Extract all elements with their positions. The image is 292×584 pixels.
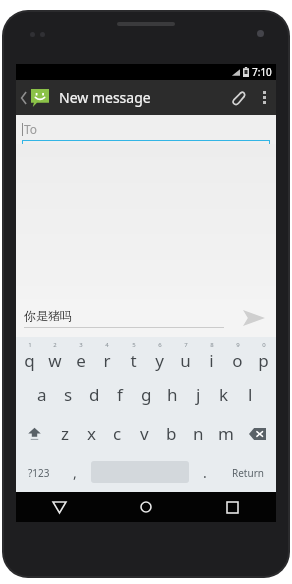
button[interactable]: j xyxy=(185,375,211,414)
button[interactable]: v xyxy=(131,414,158,453)
button[interactable]: k xyxy=(211,375,237,414)
button[interactable]: Attach xyxy=(222,80,252,115)
staticText: t xyxy=(130,349,137,372)
button[interactable]: 2 xyxy=(42,337,68,375)
button[interactable]: b xyxy=(158,414,185,453)
staticText: c xyxy=(113,422,122,445)
staticText: l xyxy=(248,383,253,406)
staticText: s xyxy=(64,383,73,406)
button[interactable]: l xyxy=(237,375,263,414)
button[interactable]: 9 xyxy=(224,337,250,375)
staticText: ?123 xyxy=(28,466,50,480)
staticText: 5 xyxy=(132,341,136,349)
staticText: 7:10 xyxy=(252,65,272,79)
staticText: . xyxy=(203,463,207,482)
staticText: Return xyxy=(232,466,264,480)
staticText: o xyxy=(232,349,243,372)
staticText: 2 xyxy=(53,341,57,349)
staticText: i xyxy=(209,349,214,372)
button[interactable]: 5 xyxy=(120,337,146,375)
button[interactable]: 4 xyxy=(94,337,120,375)
staticText: z xyxy=(61,422,69,445)
button[interactable]: c xyxy=(104,414,131,453)
staticText: b xyxy=(166,422,177,445)
button[interactable]: 0 xyxy=(250,337,276,375)
button[interactable]: More options xyxy=(252,80,276,115)
staticText: j xyxy=(196,383,201,406)
button[interactable]: h xyxy=(159,375,185,414)
button[interactable]: f xyxy=(107,375,133,414)
button[interactable]: To xyxy=(16,115,276,144)
staticText: , xyxy=(73,463,77,482)
staticText: p xyxy=(258,349,269,372)
staticText: k xyxy=(219,383,229,406)
staticText: a xyxy=(37,383,47,406)
button[interactable]: Return xyxy=(219,453,276,492)
button[interactable]: s xyxy=(55,375,81,414)
button[interactable]: , xyxy=(61,453,89,492)
staticText: e xyxy=(76,349,86,372)
button[interactable]: 7 xyxy=(172,337,198,375)
staticText: 0 xyxy=(262,341,266,349)
staticText: d xyxy=(89,383,100,406)
staticText: m xyxy=(218,422,234,445)
button[interactable]: Recent apps xyxy=(189,492,276,522)
button[interactable]: g xyxy=(133,375,159,414)
button[interactable]: Backspace xyxy=(239,414,276,453)
staticText: x xyxy=(87,422,96,445)
staticText: 4 xyxy=(105,341,109,349)
staticText: 9 xyxy=(236,341,240,349)
button[interactable]: n xyxy=(185,414,212,453)
button[interactable]: ?123 xyxy=(16,453,61,492)
staticText: 7 xyxy=(184,341,188,349)
button[interactable]: Back xyxy=(16,492,102,522)
button[interactable]: 8 xyxy=(198,337,224,375)
staticText: w xyxy=(48,349,62,372)
staticText: 1 xyxy=(28,341,32,349)
staticText: 你是猪吗 xyxy=(24,308,72,323)
staticText: r xyxy=(103,349,111,372)
button[interactable]: 1 xyxy=(16,337,42,375)
staticText: To xyxy=(24,121,38,137)
button[interactable]: m xyxy=(212,414,239,453)
staticText: u xyxy=(180,349,191,372)
staticText: f xyxy=(117,383,123,406)
button[interactable]: 3 xyxy=(68,337,94,375)
staticText: h xyxy=(167,383,178,406)
button[interactable]: 6 xyxy=(146,337,172,375)
button[interactable]: Home xyxy=(102,492,189,522)
staticText: q xyxy=(24,349,35,372)
button[interactable]: Navigate up xyxy=(16,80,51,115)
staticText: 3 xyxy=(79,341,83,349)
button[interactable]: . xyxy=(191,453,219,492)
button[interactable]: a xyxy=(29,375,55,414)
button[interactable]: z xyxy=(52,414,78,453)
staticText: New message xyxy=(59,88,151,107)
staticText: 8 xyxy=(210,341,214,349)
button[interactable]: d xyxy=(81,375,107,414)
button[interactable]: Send xyxy=(232,299,276,337)
button[interactable]: Shift xyxy=(16,414,52,453)
staticText: 6 xyxy=(158,341,162,349)
staticText: v xyxy=(140,422,149,445)
staticText: g xyxy=(141,383,152,406)
staticText: y xyxy=(155,349,164,372)
staticText: n xyxy=(193,422,204,445)
button[interactable]: 你是猪吗 xyxy=(24,308,224,328)
button[interactable]: x xyxy=(78,414,104,453)
